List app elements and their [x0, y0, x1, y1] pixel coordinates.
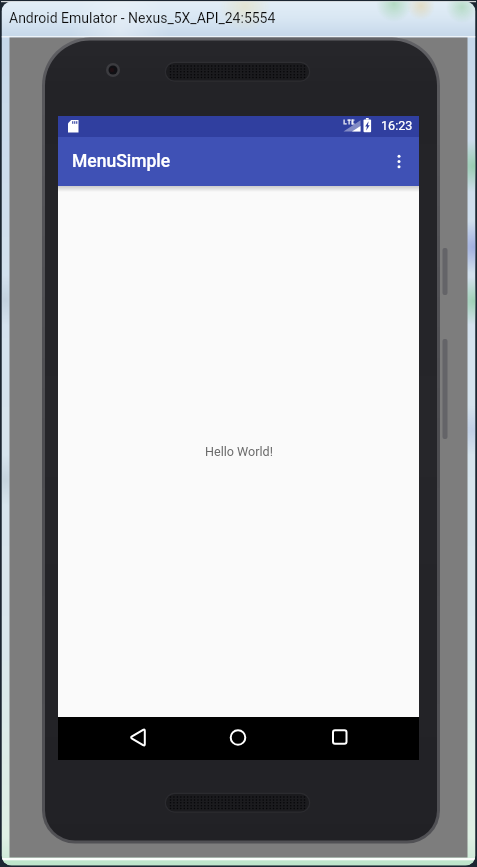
button[interactable] — [314, 717, 364, 760]
button[interactable] — [379, 137, 419, 186]
staticText: Hello World! — [205, 444, 273, 459]
button[interactable] — [113, 717, 163, 760]
staticText: Android Emulator - Nexus_5X_API_24:5554 — [9, 10, 276, 26]
staticText: 16:23 — [381, 118, 413, 133]
staticText: MenuSimple — [72, 151, 171, 172]
button[interactable] — [213, 717, 263, 760]
